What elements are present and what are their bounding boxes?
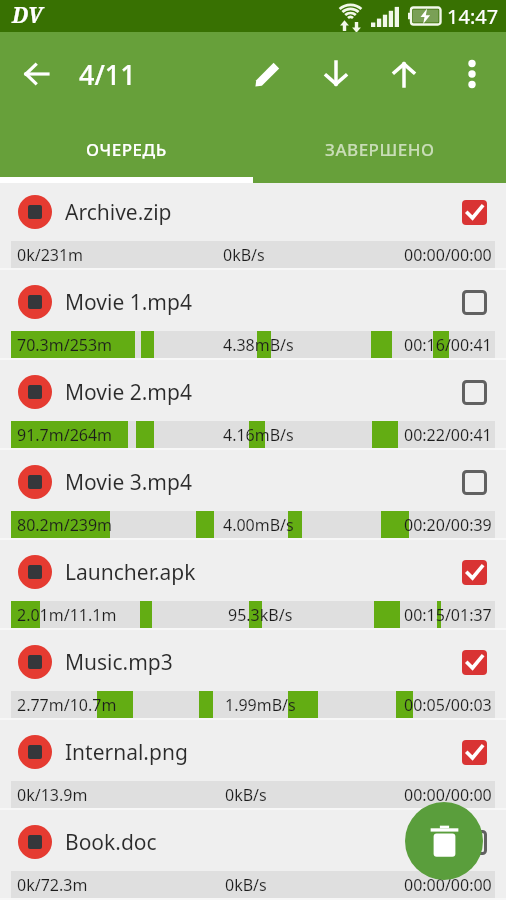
staticText: 95.3kB/s [228, 604, 293, 626]
staticText: 1.99mB/s [225, 694, 296, 716]
button[interactable]: Book.doc [0, 813, 506, 871]
staticText: 4.38mB/s [223, 334, 294, 356]
staticText: 14:47 [447, 3, 499, 30]
button[interactable]: Launcher.apk [0, 543, 506, 601]
button[interactable]: Movie 2.mp4 [0, 363, 506, 421]
staticText: 00:05/00:03 [404, 694, 492, 716]
staticText: ОЧЕРЕДЬ [86, 138, 167, 161]
staticText: Book.doc [65, 828, 157, 857]
button[interactable] [451, 819, 497, 865]
staticText: 00:22/00:41 [404, 424, 492, 446]
button[interactable] [451, 459, 497, 505]
button[interactable]: ОЧЕРЕДЬ [0, 116, 253, 183]
button[interactable] [451, 279, 497, 325]
staticText: Launcher.apk [65, 558, 196, 587]
staticText: 91.7m/264m [17, 424, 113, 446]
button[interactable] [438, 32, 506, 116]
button[interactable]: Movie 1.mp4 [0, 273, 506, 331]
staticText: 00:15/01:37 [404, 604, 492, 626]
staticText: 0kB/s [225, 784, 267, 806]
button[interactable] [451, 639, 497, 685]
staticText: 4.00mB/s [223, 514, 294, 536]
staticText: 00:00/00:00 [404, 244, 492, 266]
staticText: 80.2m/239m [17, 514, 113, 536]
staticText: 00:20/00:39 [404, 514, 492, 536]
staticText: 0k/13.9m [17, 784, 88, 806]
staticText: 00:16/00:41 [404, 334, 492, 356]
button[interactable] [451, 729, 497, 775]
staticText: 4.16mB/s [223, 424, 294, 446]
staticText: Movie 3.mp4 [65, 468, 192, 497]
button[interactable] [234, 32, 302, 116]
button[interactable] [451, 189, 497, 235]
staticText: 4/11 [79, 56, 136, 93]
staticText: Internal.png [65, 738, 188, 767]
button[interactable] [451, 369, 497, 415]
staticText: DV [12, 1, 43, 30]
staticText: Music.mp3 [65, 648, 173, 677]
staticText: 00:00/00:00 [404, 874, 492, 896]
button[interactable] [370, 32, 438, 116]
button[interactable] [302, 32, 370, 116]
staticText: 0kB/s [225, 874, 267, 896]
button[interactable]: Archive.zip [0, 183, 506, 241]
button[interactable] [405, 802, 483, 880]
button[interactable]: Internal.png [0, 723, 506, 781]
button[interactable]: ЗАВЕРШЕНО [253, 116, 506, 183]
staticText: 70.3m/253m [17, 334, 113, 356]
staticText: 0k/231m [17, 244, 84, 266]
staticText: ЗАВЕРШЕНО [325, 138, 435, 161]
staticText: 0k/72.3m [17, 874, 88, 896]
staticText: 0kB/s [223, 244, 265, 266]
staticText: 2.01m/11.1m [17, 604, 117, 626]
button[interactable]: Movie 3.mp4 [0, 453, 506, 511]
button[interactable]: Music.mp3 [0, 633, 506, 691]
staticText: 00:00/00:00 [404, 784, 492, 806]
button[interactable] [451, 549, 497, 595]
staticText: Archive.zip [65, 198, 172, 227]
staticText: Movie 1.mp4 [65, 288, 192, 317]
staticText: 2.77m/10.7m [17, 694, 117, 716]
staticText: Movie 2.mp4 [65, 378, 192, 407]
button[interactable] [10, 47, 64, 101]
